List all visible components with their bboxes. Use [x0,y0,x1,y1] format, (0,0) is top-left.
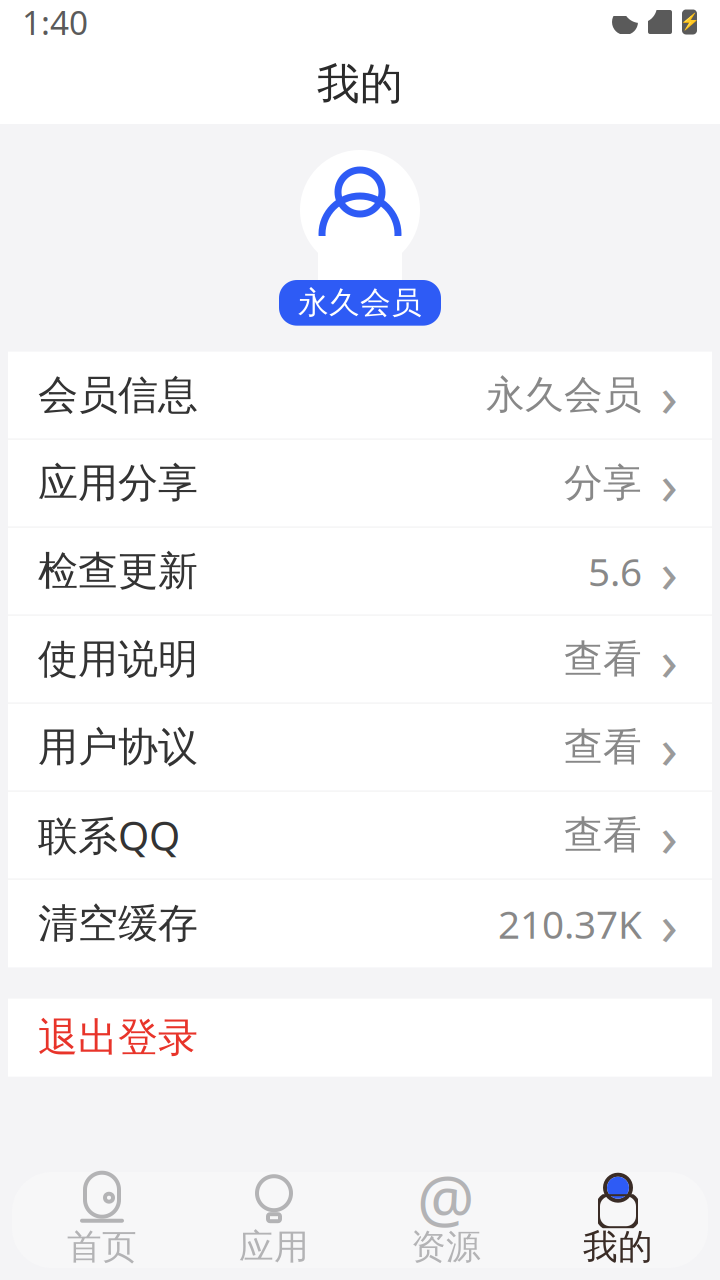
staticText: 使用说明 [38,635,198,684]
button[interactable]: @ [360,1172,532,1268]
staticText: 我的 [317,58,403,110]
button[interactable]: 检查更新 [8,528,712,616]
staticText: 查看 [564,635,642,683]
staticText: 查看 [564,811,642,859]
staticText: 永久会员 [298,284,422,322]
staticText: 用户协议 [38,723,198,772]
staticText: 永久会员 [486,371,642,419]
staticText: 会员信息 [38,371,198,420]
staticText: 应用分享 [38,459,198,508]
button[interactable]: 首页 [16,1172,188,1268]
staticText: ⚡ [679,13,699,31]
staticText: › [660,534,677,608]
staticText: 首页 [67,1226,137,1268]
button[interactable]: 用户协议 [8,704,712,792]
staticText: 我的 [583,1226,653,1268]
staticText: 联系QQ [38,809,180,862]
staticText: 5.6 [588,545,642,597]
button[interactable]: 清空缓存 [8,880,712,968]
staticText: › [660,358,677,432]
staticText: 检查更新 [38,547,198,596]
staticText: 查看 [564,723,642,771]
staticText: @ [417,1155,475,1240]
staticText: 应用 [239,1226,309,1268]
staticText: 210.37K [498,898,642,949]
staticText: 1:40 [22,0,88,44]
staticText: 清空缓存 [38,899,198,948]
staticText: › [660,710,677,784]
staticText: › [660,886,677,961]
button[interactable]: 退出登录 [8,999,712,1077]
button[interactable]: 会员信息 [8,352,712,440]
staticText: › [660,622,677,696]
staticText: 分享 [564,459,642,507]
button[interactable]: 使用说明 [8,616,712,704]
staticText: › [660,798,677,872]
button[interactable]: 我的 [532,1172,704,1268]
staticText: 退出登录 [38,1013,198,1062]
button[interactable]: 应用 [188,1172,360,1268]
button[interactable]: 应用分享 [8,440,712,528]
button[interactable]: 联系QQ [8,792,712,880]
staticText: › [660,446,677,520]
staticText: 资源 [411,1226,481,1268]
button[interactable]: 永久会员 [279,280,441,326]
